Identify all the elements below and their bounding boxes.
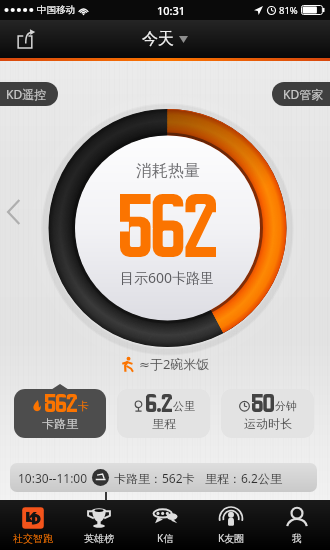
- button[interactable]: 今天: [138, 25, 192, 53]
- staticText: 10:30--11:00: [18, 470, 88, 486]
- staticText: 运动时长: [244, 416, 292, 431]
- button[interactable]: 10:30--11:00: [10, 463, 317, 492]
- staticText: 消耗热量: [136, 161, 200, 181]
- staticText: 里程：6.2公里: [205, 470, 282, 486]
- staticText: K友圈: [218, 531, 245, 545]
- staticText: 卡路里：562卡: [114, 470, 195, 486]
- staticText: 卡: [78, 399, 89, 413]
- staticText: 我: [292, 532, 302, 545]
- button[interactable]: Share: [8, 21, 44, 57]
- staticText: 卡路里: [42, 416, 78, 431]
- staticText: 今天: [142, 29, 174, 49]
- staticText: KD管家: [283, 86, 324, 102]
- button[interactable]: KD遥控: [0, 82, 58, 106]
- button[interactable]: Previous day: [7, 200, 20, 224]
- staticText: 里程: [152, 416, 176, 431]
- button[interactable]: KD管家: [272, 82, 330, 106]
- staticText: KD遥控: [6, 86, 47, 102]
- staticText: ≈于2碗米饭: [139, 355, 210, 373]
- button[interactable]: K信: [132, 500, 198, 550]
- button[interactable]: 英雄榜: [66, 500, 132, 550]
- staticText: 10:31: [157, 3, 186, 18]
- staticText: K信: [157, 531, 174, 545]
- staticText: 社交智跑: [13, 532, 53, 545]
- staticText: 分钟: [275, 399, 297, 413]
- staticText: 公里: [173, 399, 195, 413]
- button[interactable]: 公里: [117, 389, 210, 438]
- button[interactable]: 分钟: [221, 389, 314, 438]
- button[interactable]: 我: [264, 500, 330, 550]
- staticText: 英雄榜: [84, 532, 114, 545]
- button[interactable]: 社交智跑: [0, 500, 66, 550]
- button[interactable]: 卡: [14, 389, 106, 438]
- staticText: 81%: [279, 4, 298, 17]
- button[interactable]: K友圈: [198, 500, 264, 550]
- staticText: 目示600卡路里: [120, 268, 215, 287]
- staticText: 中国移动: [37, 4, 75, 16]
